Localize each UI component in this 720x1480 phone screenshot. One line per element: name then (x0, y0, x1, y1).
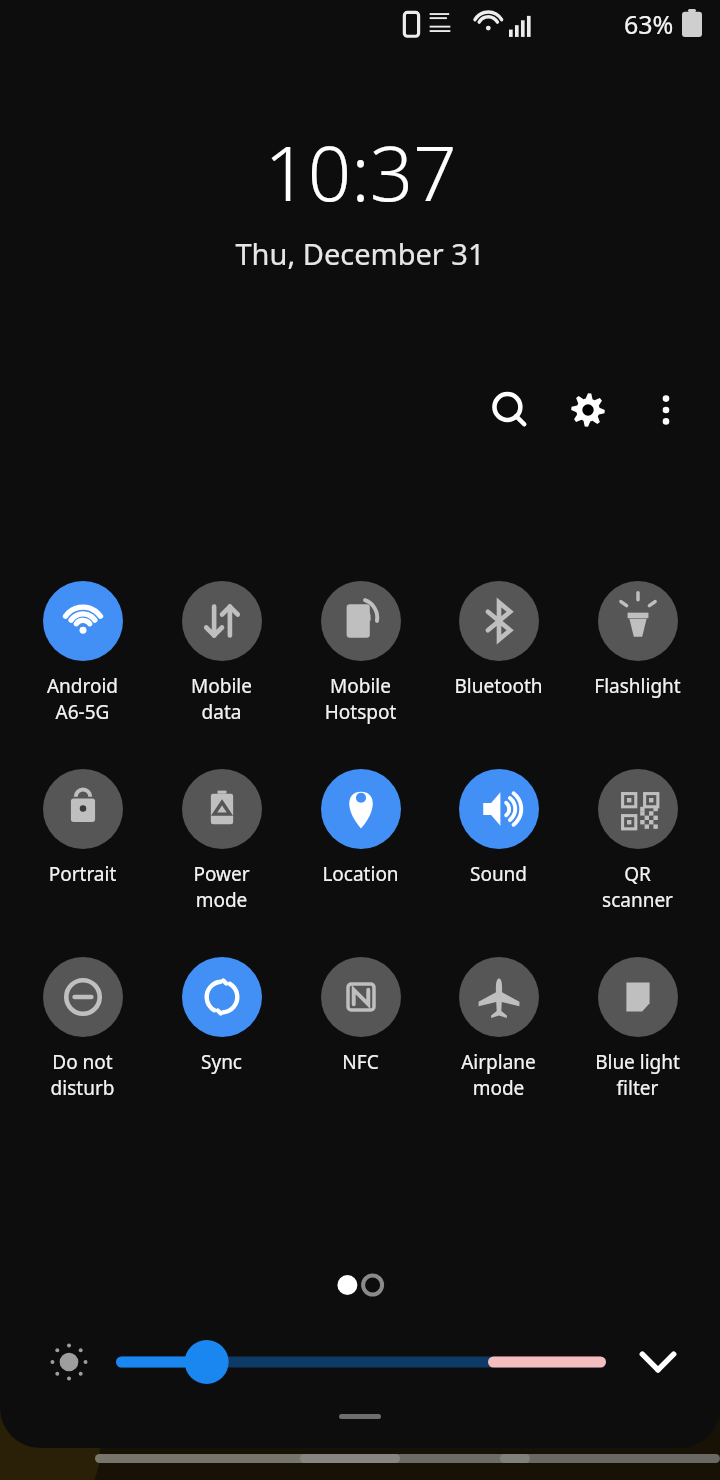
button[interactable]: NFC (294, 957, 427, 1075)
button[interactable]: Location (294, 769, 427, 887)
staticText: Flashlight (573, 673, 702, 699)
button[interactable]: Brightness (116, 1337, 624, 1387)
button[interactable]: Sound (432, 769, 565, 887)
button[interactable]: Mobile data (155, 581, 288, 725)
button[interactable]: More options (636, 380, 696, 440)
button[interactable]: QR scanner (571, 769, 704, 913)
staticText: Do not disturb (18, 1049, 147, 1101)
button[interactable]: Search (480, 380, 540, 440)
button[interactable]: Settings (558, 380, 618, 440)
button[interactable]: Android A6-5G (16, 581, 149, 725)
staticText: Location (296, 861, 425, 887)
staticText: Sound (434, 861, 563, 887)
button[interactable]: Bluetooth (432, 581, 565, 699)
staticText: Blue light filter (573, 1049, 702, 1101)
staticText: 63% (624, 7, 674, 41)
button[interactable]: Blue light filter (571, 957, 704, 1101)
button[interactable]: Auto brightness (40, 1333, 98, 1391)
staticText: Mobile Hotspot (296, 673, 425, 725)
staticText: Power mode (157, 861, 286, 913)
staticText: QR scanner (573, 861, 702, 913)
staticText: Airplane mode (434, 1049, 563, 1101)
button[interactable]: Airplane mode (432, 957, 565, 1101)
button[interactable]: Power mode (155, 769, 288, 913)
staticText: Portrait (18, 861, 147, 887)
button[interactable]: Expand (630, 1334, 686, 1390)
button[interactable]: Do not disturb (16, 957, 149, 1101)
staticText: 10:37 (264, 120, 457, 224)
button[interactable]: Mobile Hotspot (294, 581, 427, 725)
button[interactable]: Portrait (16, 769, 149, 887)
button[interactable]: Sync (155, 957, 288, 1075)
staticText: Sync (157, 1049, 286, 1075)
button[interactable]: Flashlight (571, 581, 704, 699)
button[interactable]: Collapse panel (339, 1414, 381, 1419)
staticText: Thu, December 31 (235, 234, 485, 273)
staticText: NFC (296, 1049, 425, 1075)
staticText: Android A6-5G (18, 673, 147, 725)
staticText: Bluetooth (434, 673, 563, 699)
staticText: Mobile data (157, 673, 286, 725)
